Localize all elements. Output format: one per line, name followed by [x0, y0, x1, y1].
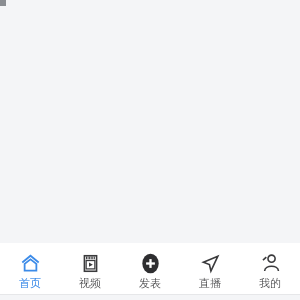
staticText: 直播 — [199, 276, 221, 290]
staticText: 发表 — [139, 276, 161, 290]
button[interactable]: 视频 — [60, 248, 120, 290]
button[interactable]: 直播 — [180, 248, 240, 290]
staticText: 视频 — [79, 276, 101, 290]
button[interactable]: 发表 — [120, 248, 180, 290]
staticText: 首页 — [19, 276, 41, 290]
button[interactable]: 首页 — [0, 248, 60, 290]
staticText: 我的 — [259, 276, 281, 290]
button[interactable]: 我的 — [240, 248, 300, 290]
